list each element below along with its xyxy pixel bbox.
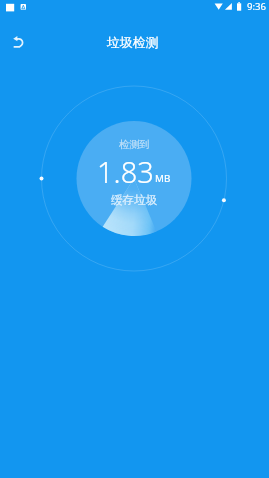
staticText: 垃圾检测 — [107, 35, 159, 51]
button[interactable]: 检测到 — [77, 121, 192, 236]
staticText: MB — [155, 172, 171, 185]
staticText: 9:36 — [247, 0, 267, 13]
staticText: 1.83 — [97, 152, 154, 191]
staticText: 检测到 — [119, 138, 150, 151]
button[interactable]: Back — [2, 26, 34, 58]
staticText: 缓存垃圾 — [111, 193, 158, 208]
